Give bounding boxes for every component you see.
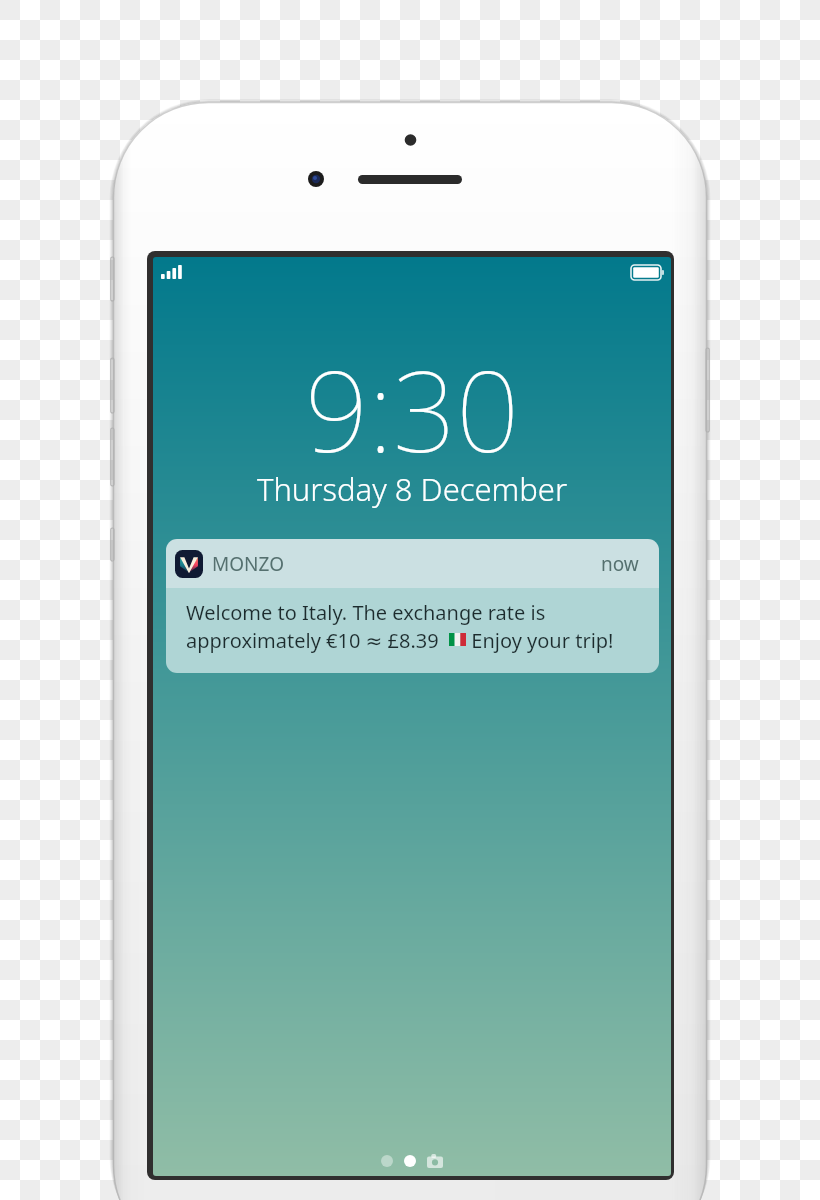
staticText: Thursday 8 December (257, 468, 568, 510)
button[interactable]: MONZO (166, 539, 659, 673)
button[interactable]: Page 2 (404, 1155, 416, 1167)
staticText: 9:30 (305, 333, 520, 484)
button[interactable]: Page 1 (381, 1155, 393, 1167)
staticText: Welcome to Italy. The exchange rate is a… (186, 599, 614, 653)
staticText: now (601, 551, 639, 577)
staticText: MONZO (212, 551, 285, 577)
button[interactable]: Camera (427, 1154, 443, 1168)
other: Lock screen (153, 257, 671, 1176)
